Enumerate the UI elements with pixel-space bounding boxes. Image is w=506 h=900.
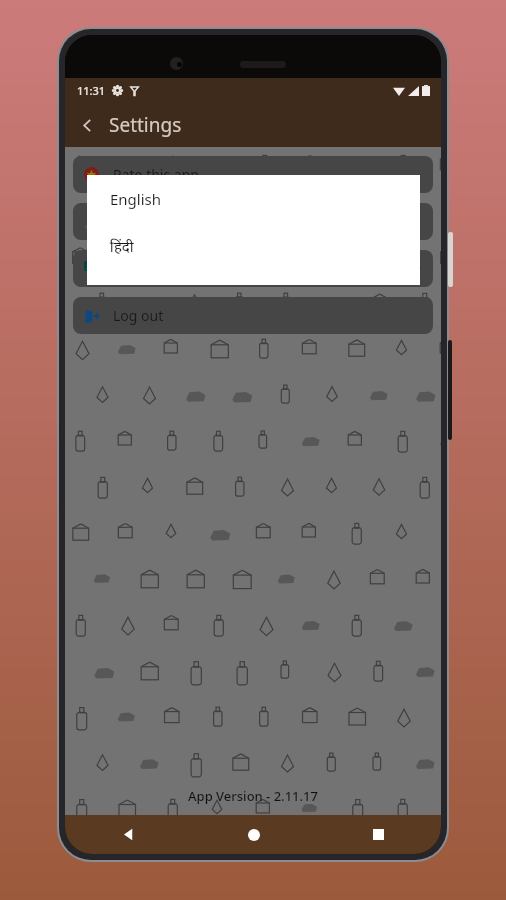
- staticText: Rate this app: [113, 165, 199, 184]
- button[interactable]: Help: [73, 203, 433, 240]
- staticText: App Version - 2.11.17: [65, 787, 441, 805]
- button[interactable]: Language: [73, 250, 433, 287]
- button[interactable]: Recent apps: [316, 815, 441, 854]
- button[interactable]: English: [87, 175, 420, 222]
- staticText: 11:31: [77, 83, 106, 98]
- button[interactable]: Back: [65, 815, 191, 854]
- button[interactable]: हिंदी: [87, 222, 420, 269]
- staticText: हिंदी: [110, 236, 134, 256]
- button[interactable]: Log out: [73, 297, 433, 334]
- staticText: English: [110, 189, 162, 209]
- button[interactable]: Back: [65, 103, 109, 147]
- staticText: Log out: [113, 306, 164, 325]
- button[interactable]: Rate this app: [73, 156, 433, 193]
- button[interactable]: Home: [191, 815, 316, 854]
- staticText: Settings: [109, 112, 182, 138]
